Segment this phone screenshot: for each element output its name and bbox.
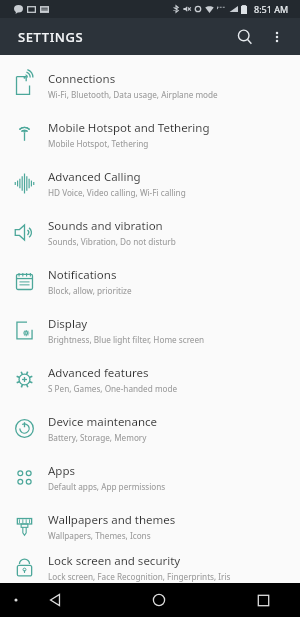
- button[interactable]: Mobile Hotspot and Tethering: [0, 110, 300, 159]
- staticText: S Pen, Games, One-handed mode: [48, 383, 178, 394]
- button[interactable]: Apps: [0, 453, 300, 502]
- button[interactable]: Device maintenance: [0, 404, 300, 453]
- staticText: Brightness, Blue light filter, Home scre…: [48, 334, 205, 345]
- staticText: Battery, Storage, Memory: [48, 432, 147, 443]
- staticText: Block, allow, prioritize: [48, 285, 132, 296]
- staticText: Advanced Calling: [48, 169, 141, 185]
- staticText: Lock screen and security: [48, 553, 181, 569]
- button[interactable]: Advanced Calling: [0, 159, 300, 208]
- staticText: Wallpapers and themes: [48, 512, 176, 528]
- staticText: Sounds and vibration: [48, 218, 163, 234]
- staticText: Default apps, App permissions: [48, 481, 166, 492]
- staticText: HD Voice, Video calling, Wi-Fi calling: [48, 187, 186, 198]
- staticText: Display: [48, 316, 88, 332]
- staticText: Device maintenance: [48, 414, 158, 430]
- staticText: Advanced features: [48, 365, 149, 381]
- staticText: SETTINGS: [18, 28, 84, 46]
- staticText: Mobile Hotspot and Tethering: [48, 120, 210, 136]
- staticText: Mobile Hotspot, Tethering: [48, 138, 149, 149]
- staticText: Wallpapers, Themes, Icons: [48, 530, 151, 541]
- staticText: Connections: [48, 71, 116, 87]
- button[interactable]: Connections: [0, 61, 300, 110]
- button[interactable]: More options: [262, 22, 292, 52]
- staticText: Notifications: [48, 267, 117, 283]
- staticText: 8:51 AM: [254, 3, 289, 15]
- button[interactable]: Recent apps: [244, 583, 282, 617]
- staticText: Lock screen, Face Recognition, Fingerpri…: [48, 571, 231, 582]
- staticText: Wi-Fi, Bluetooth, Data usage, Airplane m…: [48, 89, 218, 100]
- button[interactable]: Sounds and vibration: [0, 208, 300, 257]
- staticText: Sounds, Vibration, Do not disturb: [48, 236, 176, 247]
- button[interactable]: Advanced features: [0, 355, 300, 404]
- button[interactable]: Search: [228, 20, 262, 54]
- button[interactable]: Home: [140, 583, 178, 617]
- button[interactable]: Display: [0, 306, 300, 355]
- button[interactable]: Wallpapers and themes: [0, 502, 300, 551]
- button[interactable]: Back: [36, 583, 74, 617]
- button[interactable]: Lock screen and security: [0, 551, 300, 583]
- button[interactable]: Notifications: [0, 257, 300, 306]
- staticText: Apps: [48, 463, 76, 479]
